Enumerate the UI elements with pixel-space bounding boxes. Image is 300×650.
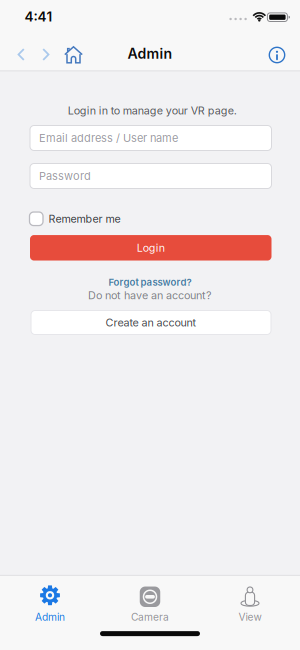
button[interactable]: Camera	[104, 585, 196, 623]
button[interactable]: Back	[10, 42, 32, 67]
button[interactable]: Home	[60, 42, 87, 68]
staticText: Admin	[35, 611, 65, 623]
staticText: Camera	[131, 611, 169, 623]
staticText: Email address / User name	[39, 131, 178, 145]
button[interactable]: Forgot password?	[106, 274, 193, 290]
staticText: Password	[39, 169, 91, 183]
staticText: Admin	[127, 45, 172, 62]
button[interactable]: Forward	[34, 42, 56, 67]
button[interactable]: Info	[264, 42, 290, 68]
button[interactable]: Login	[30, 235, 271, 261]
staticText: Login in to manage your VR page.	[68, 104, 237, 117]
button[interactable]: View	[204, 585, 296, 623]
staticText: View	[238, 611, 261, 623]
staticText: Create an account	[105, 316, 196, 329]
staticText: Do not have an account?	[88, 289, 212, 302]
button[interactable]: Email address / User name	[30, 125, 271, 150]
staticText: Login	[137, 241, 165, 254]
button[interactable]: Create an account	[31, 310, 271, 334]
staticText: Forgot password?	[108, 276, 191, 288]
staticText: 4:41	[24, 8, 52, 25]
button[interactable]: Admin	[4, 585, 96, 623]
button[interactable]: Password	[30, 163, 271, 188]
button[interactable]: Remember me	[29, 210, 271, 228]
staticText: Remember me	[48, 212, 120, 225]
